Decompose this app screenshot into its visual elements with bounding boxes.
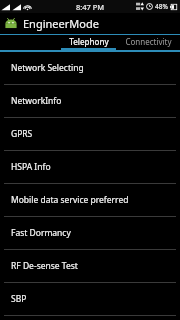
staticText: Network Selecting <box>11 62 84 74</box>
button[interactable]: Connectivity <box>116 35 180 50</box>
staticText: GPRS <box>11 128 33 140</box>
button[interactable]: GPRS <box>0 118 180 151</box>
button[interactable]: SBP <box>0 283 180 316</box>
staticText: SBP <box>11 293 27 305</box>
button[interactable]: RF De-sense Test <box>0 250 180 283</box>
staticText: Mobile data service preferred <box>11 194 129 206</box>
button[interactable]: EngineerMode <box>0 13 180 34</box>
staticText: HSPA Info <box>11 161 51 173</box>
staticText: 8:47 PM <box>76 2 105 12</box>
button[interactable]: Mobile data service preferred <box>0 184 180 217</box>
staticText: EngineerMode <box>23 16 99 31</box>
staticText: NetworkInfo <box>11 95 62 107</box>
button[interactable]: HSPA Info <box>0 151 180 184</box>
button[interactable]: Network Selecting <box>0 52 180 85</box>
staticText: Telephony <box>69 36 109 47</box>
button[interactable]: NetworkInfo <box>0 85 180 118</box>
button[interactable]: Fast Dormancy <box>0 217 180 250</box>
button[interactable]: Telephony <box>61 35 116 50</box>
staticText: Connectivity <box>125 36 172 47</box>
staticText: 48% <box>155 2 168 11</box>
staticText: RF De-sense Test <box>11 260 78 272</box>
staticText: Fast Dormancy <box>11 227 71 239</box>
